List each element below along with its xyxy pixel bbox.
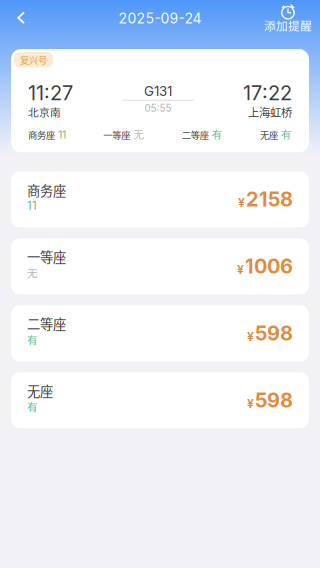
staticText: 添加提醒 — [264, 19, 312, 31]
staticText: ¥ — [237, 265, 244, 275]
staticText: 11 — [58, 130, 66, 139]
staticText: ¥ — [238, 198, 245, 208]
staticText: 无 — [27, 267, 38, 278]
staticText: 2158 — [246, 191, 293, 208]
staticText: 复兴号 — [20, 55, 47, 64]
staticText: 05:55 — [144, 104, 171, 112]
staticText: 二等座 — [182, 130, 209, 139]
staticText: G131 — [144, 85, 172, 97]
staticText: 11 — [27, 201, 37, 210]
button[interactable]: 二等座 — [11, 305, 309, 361]
staticText: ¥ — [247, 332, 254, 342]
staticText: 商务座 — [27, 183, 66, 197]
staticText: 598 — [255, 325, 293, 342]
staticText: 北京南 — [28, 106, 61, 117]
staticText: 有 — [212, 130, 223, 139]
staticText: 有 — [27, 401, 38, 412]
staticText: 商务座 — [28, 130, 55, 139]
staticText: 上海虹桥 — [248, 106, 292, 118]
button[interactable]: 添加提醒 — [261, 4, 315, 38]
staticText: 无座 — [260, 130, 278, 139]
staticText: ¥ — [247, 399, 254, 409]
staticText: 17:22 — [243, 84, 292, 101]
button[interactable]: Back — [0, 3, 40, 37]
staticText: 有 — [281, 130, 292, 139]
staticText: 有 — [27, 334, 38, 345]
staticText: 无 — [133, 130, 144, 139]
staticText: 1006 — [245, 258, 293, 275]
staticText: 无座 — [27, 384, 53, 397]
staticText: 11:27 — [28, 84, 73, 101]
staticText: 一等座 — [103, 130, 130, 139]
staticText: 2025-09-24 — [118, 12, 201, 24]
button[interactable]: 无座 — [11, 372, 309, 428]
button[interactable]: 一等座 — [11, 238, 309, 294]
staticText: 598 — [255, 392, 293, 409]
staticText: 一等座 — [27, 250, 66, 263]
button[interactable]: 商务座 — [11, 171, 309, 227]
staticText: 二等座 — [27, 317, 66, 330]
